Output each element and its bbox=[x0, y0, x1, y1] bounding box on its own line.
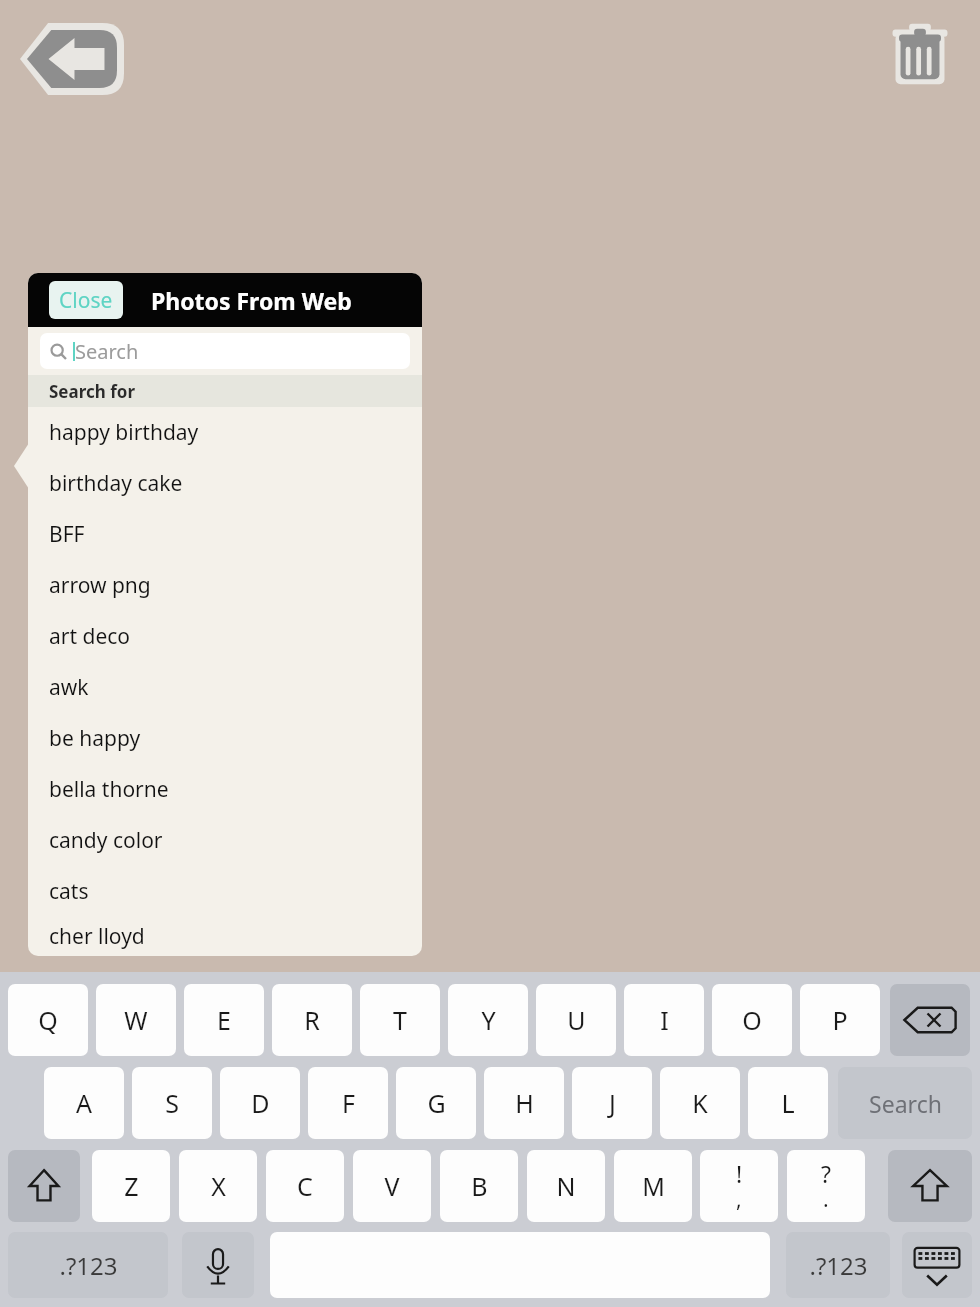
button[interactable]: Q bbox=[8, 984, 88, 1056]
staticText: Photos From Web bbox=[151, 285, 352, 316]
staticText: arrow png bbox=[49, 571, 151, 600]
button[interactable]: D bbox=[220, 1067, 300, 1139]
button[interactable]: candy color bbox=[28, 815, 422, 866]
button[interactable]: ? bbox=[787, 1150, 865, 1222]
button[interactable]: C bbox=[266, 1150, 344, 1222]
staticText: E bbox=[217, 1003, 231, 1037]
button[interactable]: B bbox=[440, 1150, 518, 1222]
staticText: Y bbox=[481, 1003, 496, 1037]
button[interactable]: BFF bbox=[28, 509, 422, 560]
button[interactable]: .?123 bbox=[786, 1232, 890, 1298]
button[interactable]: L bbox=[748, 1067, 828, 1139]
button[interactable]: Backspace bbox=[890, 984, 970, 1056]
button[interactable]: G bbox=[396, 1067, 476, 1139]
staticText: ! bbox=[736, 1158, 743, 1189]
button[interactable]: awk bbox=[28, 662, 422, 713]
staticText: C bbox=[297, 1169, 313, 1203]
staticText: A bbox=[76, 1086, 92, 1120]
staticText: .?123 bbox=[59, 1249, 118, 1282]
staticText: W bbox=[124, 1003, 148, 1037]
button[interactable]: Shift bbox=[888, 1150, 972, 1222]
staticText: Q bbox=[38, 1003, 58, 1037]
button[interactable]: Shift bbox=[8, 1150, 80, 1222]
button[interactable]: I bbox=[624, 984, 704, 1056]
button[interactable]: W bbox=[96, 984, 176, 1056]
button[interactable]: H bbox=[484, 1067, 564, 1139]
button[interactable]: cats bbox=[28, 866, 422, 917]
staticText: D bbox=[251, 1086, 270, 1120]
button[interactable]: Y bbox=[448, 984, 528, 1056]
button[interactable]: .?123 bbox=[8, 1232, 168, 1298]
staticText: cher lloyd bbox=[49, 922, 145, 951]
staticText: J bbox=[609, 1086, 616, 1120]
staticText: bella thorne bbox=[49, 775, 169, 804]
button[interactable]: A bbox=[44, 1067, 124, 1139]
button[interactable]: U bbox=[536, 984, 616, 1056]
staticText: art deco bbox=[49, 622, 131, 651]
staticText: Z bbox=[124, 1169, 139, 1203]
button[interactable]: Search bbox=[40, 333, 410, 369]
staticText: O bbox=[742, 1003, 762, 1037]
button[interactable]: K bbox=[660, 1067, 740, 1139]
staticText: S bbox=[165, 1086, 179, 1120]
staticText: happy birthday bbox=[49, 418, 199, 447]
staticText: I bbox=[660, 1003, 669, 1037]
button[interactable]: cher lloyd bbox=[28, 917, 422, 956]
staticText: Close bbox=[59, 286, 113, 315]
staticText: N bbox=[556, 1169, 576, 1203]
staticText: , bbox=[736, 1185, 742, 1214]
staticText: Search for bbox=[49, 380, 136, 403]
button[interactable]: T bbox=[360, 984, 440, 1056]
staticText: X bbox=[211, 1169, 226, 1203]
staticText: B bbox=[471, 1169, 488, 1203]
button[interactable]: O bbox=[712, 984, 792, 1056]
button[interactable]: F bbox=[308, 1067, 388, 1139]
button[interactable]: E bbox=[184, 984, 264, 1056]
button[interactable]: Close bbox=[49, 281, 123, 319]
staticText: U bbox=[567, 1003, 586, 1037]
button[interactable]: Back bbox=[18, 21, 126, 97]
button[interactable]: V bbox=[353, 1150, 431, 1222]
staticText: M bbox=[642, 1169, 665, 1203]
staticText: P bbox=[832, 1003, 848, 1037]
button[interactable]: art deco bbox=[28, 611, 422, 662]
button[interactable]: R bbox=[272, 984, 352, 1056]
staticText: Search bbox=[869, 1088, 942, 1119]
button[interactable]: Z bbox=[92, 1150, 170, 1222]
staticText: K bbox=[692, 1086, 708, 1120]
staticText: L bbox=[781, 1086, 795, 1120]
button[interactable]: X bbox=[179, 1150, 257, 1222]
button[interactable]: Hide keyboard bbox=[902, 1232, 972, 1298]
button[interactable]: be happy bbox=[28, 713, 422, 764]
button[interactable]: Delete bbox=[886, 18, 954, 90]
button[interactable]: M bbox=[614, 1150, 692, 1222]
button[interactable]: ! bbox=[700, 1150, 778, 1222]
staticText: . bbox=[823, 1185, 829, 1214]
button[interactable]: Search bbox=[838, 1067, 972, 1139]
staticText: H bbox=[515, 1086, 534, 1120]
button[interactable]: S bbox=[132, 1067, 212, 1139]
staticText: cats bbox=[49, 877, 89, 906]
button[interactable]: Dictate bbox=[182, 1232, 254, 1298]
staticText: T bbox=[393, 1003, 407, 1037]
staticText: birthday cake bbox=[49, 469, 183, 498]
button[interactable]: J bbox=[572, 1067, 652, 1139]
staticText: V bbox=[384, 1169, 400, 1203]
button[interactable]: happy birthday bbox=[28, 407, 422, 458]
button[interactable]: birthday cake bbox=[28, 458, 422, 509]
staticText: G bbox=[427, 1086, 446, 1120]
staticText: R bbox=[304, 1003, 320, 1037]
staticText: F bbox=[342, 1086, 355, 1120]
staticText: BFF bbox=[49, 520, 85, 549]
staticText: awk bbox=[49, 673, 89, 702]
button[interactable]: N bbox=[527, 1150, 605, 1222]
staticText: ? bbox=[821, 1158, 831, 1189]
button[interactable]: bella thorne bbox=[28, 764, 422, 815]
staticText: be happy bbox=[49, 724, 141, 753]
staticText: candy color bbox=[49, 826, 163, 855]
button[interactable]: arrow png bbox=[28, 560, 422, 611]
staticText: Search bbox=[75, 338, 139, 365]
staticText: .?123 bbox=[809, 1249, 868, 1282]
button[interactable]: P bbox=[800, 984, 880, 1056]
